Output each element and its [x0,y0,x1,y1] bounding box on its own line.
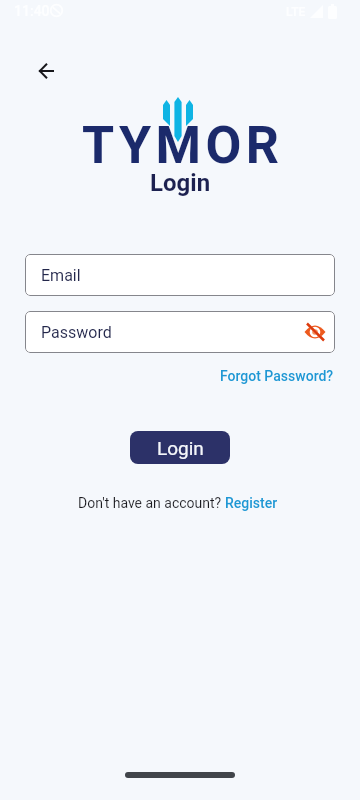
staticText: Login [150,169,211,197]
staticText: 11:40 [14,3,50,19]
staticText: Password [41,323,112,342]
staticText: Login [157,437,204,459]
staticText: Email [41,266,81,285]
staticText: Don't have an account? [78,495,222,511]
button[interactable]: Email [25,254,335,296]
button[interactable]: Register [225,495,278,511]
button[interactable]: Login [130,431,230,464]
staticText: LTE [286,5,306,19]
button[interactable]: Password [25,311,335,353]
button[interactable] [32,57,60,85]
button[interactable]: Forgot Password? [220,368,334,384]
button[interactable] [299,316,331,348]
staticText: TYMOR [82,115,284,176]
